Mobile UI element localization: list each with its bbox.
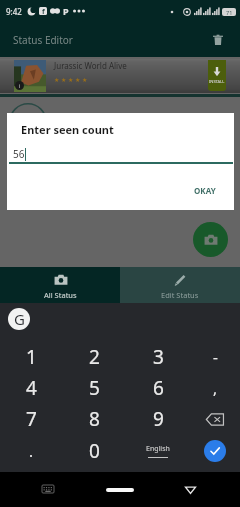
staticText: ★ <box>68 76 74 83</box>
staticText: 1 <box>26 344 37 370</box>
staticText: f <box>42 7 45 15</box>
button[interactable]: Camera <box>193 222 228 257</box>
staticText: , <box>213 378 218 398</box>
staticText: INSTALL <box>209 79 225 84</box>
button[interactable]: Enter <box>190 435 240 467</box>
button[interactable]: Edit Status <box>120 267 240 303</box>
staticText: 4 <box>26 375 37 401</box>
button[interactable]: Backspace <box>190 403 240 435</box>
staticText: ★ <box>75 76 81 83</box>
staticText: 0 <box>89 438 100 464</box>
staticText: 6 <box>153 375 164 401</box>
staticText: 2 <box>89 344 100 370</box>
staticText: 56 <box>13 147 25 161</box>
staticText: ★ <box>82 76 88 83</box>
staticText: ★ <box>61 76 67 83</box>
staticText: i <box>19 82 21 89</box>
staticText: OKAY <box>194 185 216 196</box>
button[interactable]: . <box>0 435 63 467</box>
other: Backspace <box>206 413 224 426</box>
staticText: Jurassic World Alive <box>54 60 127 71</box>
button[interactable]: Google <box>8 308 30 330</box>
button[interactable]: 1 <box>0 341 63 372</box>
staticText: Enter seen count <box>21 122 114 137</box>
button[interactable]: 7 <box>0 403 63 435</box>
staticText: 71 <box>226 9 233 16</box>
button[interactable]: 2 <box>63 341 126 372</box>
button[interactable]: 3 <box>126 341 190 372</box>
staticText: 3 <box>153 344 164 370</box>
button[interactable]: Home <box>106 488 134 492</box>
button[interactable]: 0 <box>63 435 126 467</box>
button[interactable]: Back <box>181 480 200 499</box>
button[interactable]: Keyboard <box>39 480 57 498</box>
staticText: 7 <box>26 406 37 432</box>
button[interactable]: Delete <box>208 30 228 50</box>
button[interactable]: Install <box>208 60 226 91</box>
button[interactable]: 5 <box>63 372 126 403</box>
button[interactable]: 9 <box>126 403 190 435</box>
button[interactable]: English <box>126 435 190 467</box>
staticText: Edit Status <box>161 290 199 300</box>
staticText: P <box>63 5 69 17</box>
staticText: ★ <box>54 76 60 83</box>
staticText: Status Editor <box>13 33 73 47</box>
button[interactable]: All Status <box>0 267 120 303</box>
staticText: 9:42 <box>6 6 22 17</box>
staticText: - <box>213 347 218 367</box>
staticText: 9 <box>153 406 164 432</box>
button[interactable]: 8 <box>63 403 126 435</box>
button[interactable]: , <box>190 372 240 403</box>
staticText: . <box>29 441 34 461</box>
staticText: All Status <box>44 290 77 300</box>
button[interactable]: OKAY <box>186 179 224 202</box>
button[interactable]: 4 <box>0 372 63 403</box>
other: Enter <box>204 440 226 462</box>
button[interactable]: - <box>190 341 240 372</box>
staticText: 5 <box>89 375 100 401</box>
staticText: English <box>146 444 170 454</box>
staticText: 8 <box>89 406 100 432</box>
staticText: G <box>14 309 25 329</box>
button[interactable]: 6 <box>126 372 190 403</box>
